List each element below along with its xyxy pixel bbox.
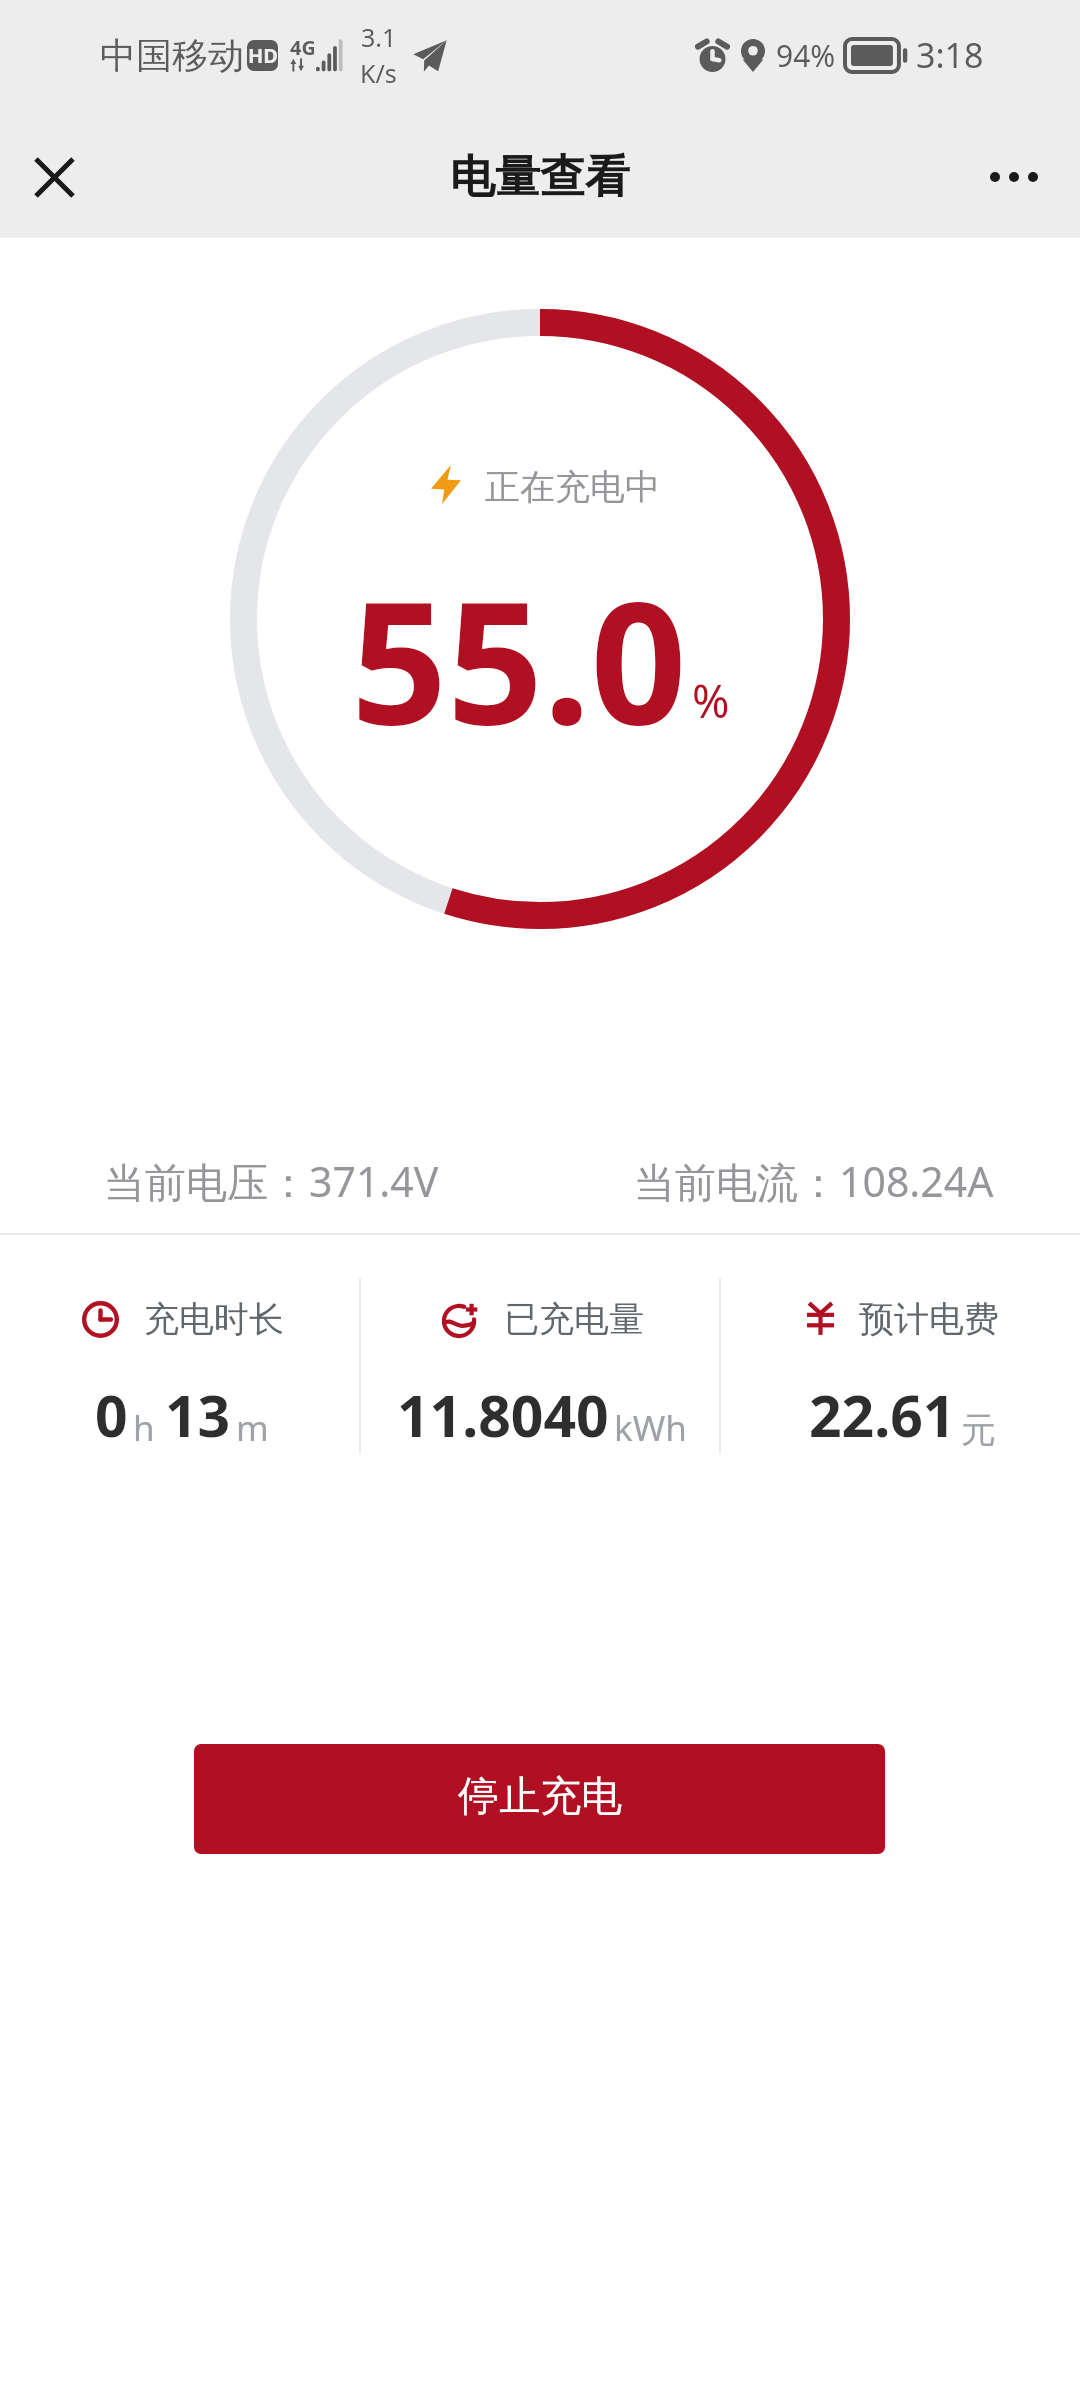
staticText: 已充电量 [504, 1297, 644, 1341]
staticText: 当前电流：108.24A [634, 1153, 994, 1209]
staticText: 11.8040 [397, 1376, 609, 1454]
button[interactable]: Close [16, 139, 92, 215]
staticText: 3:18 [916, 32, 984, 78]
button[interactable]: More options [976, 139, 1052, 215]
staticText: 4G [290, 34, 314, 61]
staticText: 中国移动 [100, 33, 244, 78]
staticText: 55.0 [351, 544, 687, 773]
staticText: 22.61 [809, 1376, 956, 1454]
staticText: h [133, 1404, 155, 1452]
staticText: 元 [961, 1408, 996, 1452]
staticText: 停止充电 [458, 1771, 622, 1823]
button[interactable]: 停止充电 [194, 1744, 885, 1854]
staticText: K/s [360, 56, 397, 90]
staticText: % [692, 670, 730, 731]
staticText: kWh [614, 1404, 687, 1452]
staticText: 13 [165, 1376, 231, 1454]
staticText: HD [248, 42, 278, 69]
staticText: 0 [95, 1376, 128, 1454]
staticText: 94% [776, 35, 836, 76]
staticText: 3.1 [361, 20, 397, 54]
staticText: 预计电费 [859, 1297, 999, 1341]
staticText: 充电时长 [144, 1297, 284, 1341]
staticText: 当前电压：371.4V [104, 1153, 439, 1209]
staticText: 电量查看 [450, 149, 630, 206]
staticText: 正在充电中 [485, 465, 660, 509]
staticText: m [236, 1404, 269, 1452]
